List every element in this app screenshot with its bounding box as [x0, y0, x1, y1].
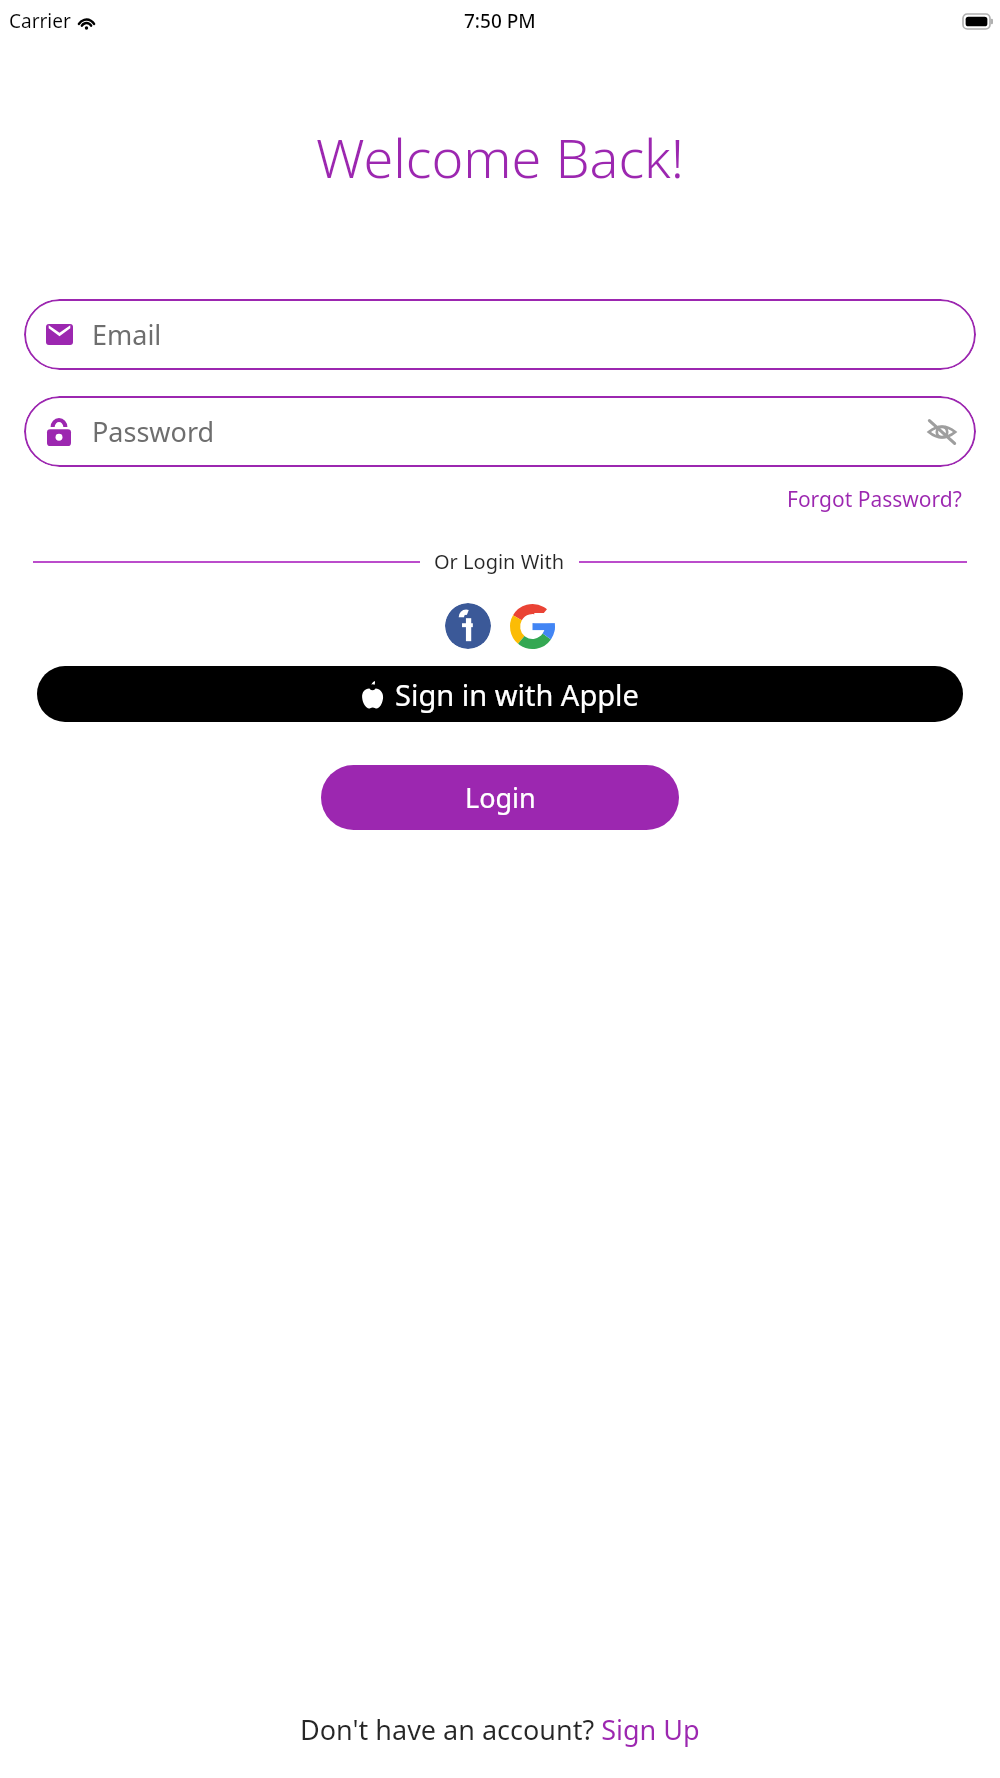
button[interactable]: Sign in with Google: [509, 603, 555, 649]
button[interactable]: Don't have an account? Sign Up: [300, 1711, 700, 1748]
button[interactable]: Sign in with Apple: [37, 666, 963, 722]
staticText: Login: [465, 779, 536, 816]
button[interactable]: Sign in with Facebook: [445, 603, 491, 649]
staticText: Sign in with Apple: [395, 675, 639, 714]
button[interactable]: Login: [321, 765, 679, 830]
staticText: Don't have an account? Sign Up: [300, 1711, 700, 1748]
staticText: 7:50 PM: [464, 8, 536, 34]
button[interactable]: Password: [24, 396, 976, 467]
staticText: Welcome Back!: [0, 120, 1000, 194]
staticText: Carrier: [9, 8, 71, 34]
button[interactable]: Email: [24, 299, 976, 370]
staticText: Forgot Password?: [787, 485, 962, 514]
staticText: Password: [92, 413, 922, 450]
button[interactable]: Forgot Password?: [787, 485, 962, 514]
button[interactable]: Show password: [922, 412, 962, 452]
staticText: Or Login With: [434, 548, 565, 575]
staticText: Email: [92, 316, 962, 353]
